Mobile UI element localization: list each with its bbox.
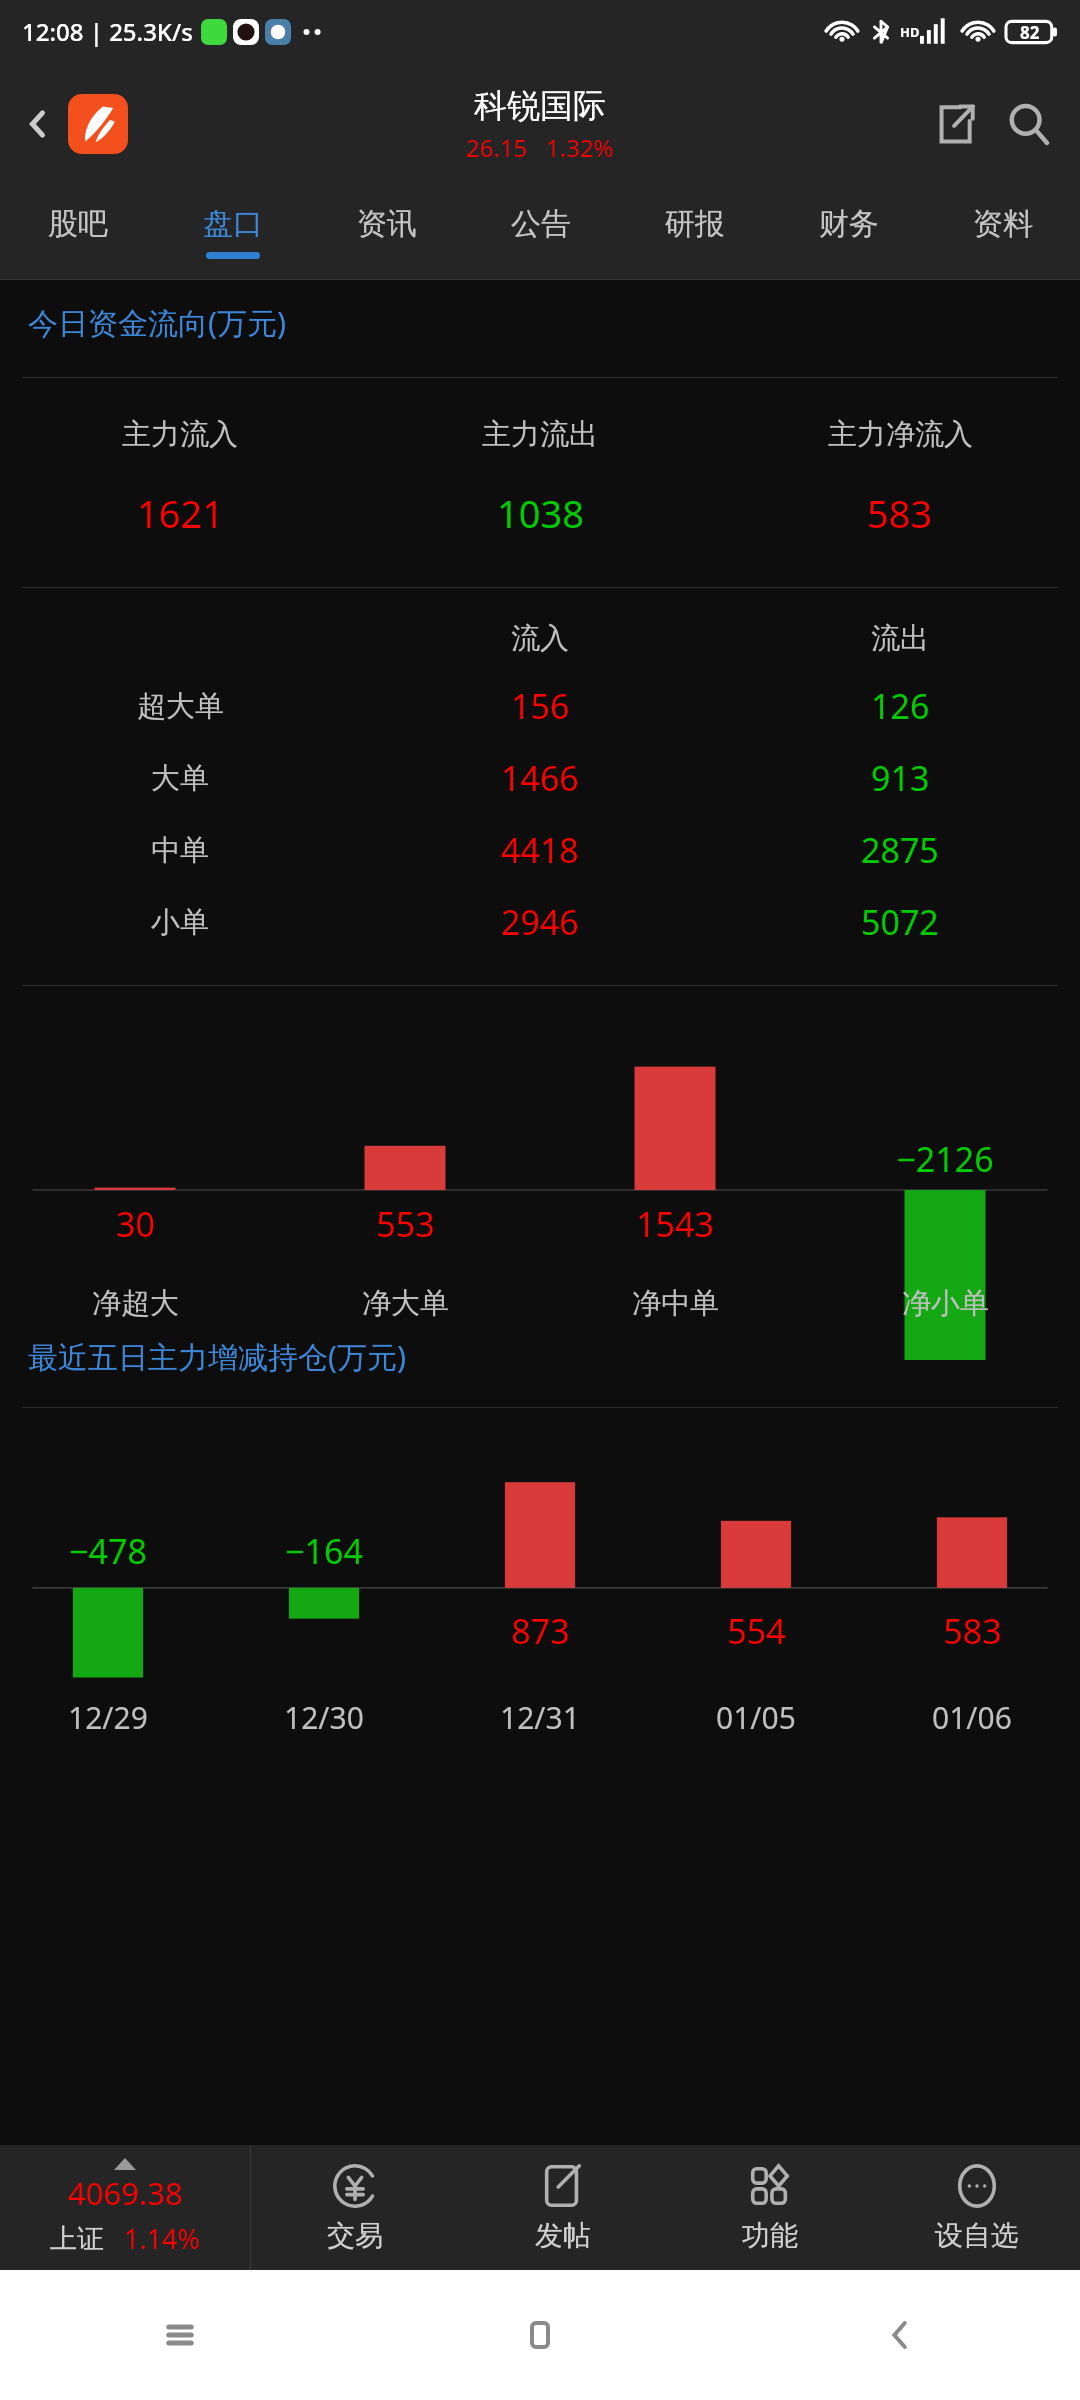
staticText: 26.15 (466, 131, 528, 164)
staticText: 发帖 (535, 2218, 591, 2253)
button[interactable]: 设自选 (873, 2145, 1080, 2270)
button[interactable]: 发帖 (459, 2145, 666, 2270)
staticText: 12:08 | 25.3K/s (22, 15, 193, 48)
staticText: 上证 (50, 2222, 104, 2256)
staticText: 12/31 (500, 1697, 580, 1738)
button[interactable]: Back (720, 2270, 1080, 2400)
staticText: 1543 (636, 1201, 714, 1247)
staticText: 82 (1020, 21, 1040, 44)
staticText: 583 (867, 487, 933, 539)
staticText: 554 (727, 1608, 786, 1654)
staticText: 盘口 (203, 205, 263, 243)
staticText: 01/05 (716, 1697, 796, 1738)
staticText: 913 (871, 755, 930, 801)
staticText: 最近五日主力增减持仓(万元) (28, 1336, 406, 1377)
staticText: 主力净流入 (828, 416, 973, 453)
staticText: 公告 (511, 205, 571, 243)
staticText: 126 (871, 683, 930, 729)
staticText: 超大单 (137, 688, 224, 725)
staticText: 12/29 (68, 1697, 148, 1738)
button[interactable]: 资讯 (310, 185, 464, 279)
staticText: 设自选 (935, 2218, 1019, 2253)
staticText: 156 (511, 683, 570, 729)
staticText: 大单 (151, 760, 209, 797)
staticText: 1038 (497, 487, 584, 539)
staticText: 财务 (819, 205, 879, 243)
button[interactable]: 股吧 (0, 185, 155, 279)
staticText: 主力流入 (122, 416, 238, 453)
staticText: 5072 (861, 899, 939, 945)
staticText: 873 (511, 1608, 570, 1654)
staticText: 交易 (327, 2218, 383, 2253)
staticText: 1.32% (546, 131, 614, 164)
staticText: 研报 (665, 205, 725, 243)
staticText: 今日资金流向(万元) (28, 302, 286, 343)
staticText: 主力流出 (482, 416, 598, 453)
button[interactable]: Back (10, 96, 66, 152)
button[interactable]: Search (996, 91, 1062, 157)
staticText: 净小单 (902, 1285, 989, 1322)
button[interactable]: 交易 (251, 2145, 459, 2270)
staticText: 583 (943, 1608, 1002, 1654)
button[interactable]: 功能 (666, 2145, 873, 2270)
button[interactable]: 财务 (772, 185, 926, 279)
button[interactable]: Home (360, 2270, 720, 2400)
staticText: 资料 (973, 205, 1033, 243)
staticText: 1621 (137, 487, 224, 539)
staticText: 净大单 (362, 1285, 449, 1322)
staticText: 净超大 (92, 1285, 179, 1322)
staticText: 中单 (151, 832, 209, 869)
staticText: 4418 (501, 827, 579, 873)
button[interactable]: 资料 (926, 185, 1080, 279)
button[interactable]: 4069.38 (0, 2145, 250, 2270)
staticText: 净中单 (632, 1285, 719, 1322)
staticText: 资讯 (357, 205, 417, 243)
staticText: 功能 (742, 2218, 798, 2253)
staticText: 01/06 (932, 1697, 1012, 1738)
staticText: 553 (376, 1201, 435, 1247)
staticText: 小单 (151, 904, 209, 941)
staticText: −478 (69, 1528, 147, 1574)
staticText: 2875 (861, 827, 939, 873)
staticText: 12/30 (284, 1697, 364, 1738)
staticText: 流出 (871, 620, 929, 657)
staticText: 1.14% (124, 2220, 201, 2257)
staticText: 股吧 (48, 205, 108, 243)
button[interactable]: 盘口 (155, 185, 310, 279)
button[interactable]: App logo (68, 94, 128, 154)
button[interactable]: 公告 (464, 185, 618, 279)
staticText: −164 (285, 1528, 363, 1574)
button[interactable]: 研报 (618, 185, 772, 279)
staticText: 1466 (501, 755, 579, 801)
button[interactable]: Recents (0, 2270, 360, 2400)
staticText: 流入 (511, 620, 569, 657)
staticText: −2126 (896, 1136, 994, 1182)
staticText: HD (900, 23, 920, 41)
staticText: 2946 (501, 899, 579, 945)
staticText: 4069.38 (68, 2172, 183, 2214)
button[interactable]: Share (924, 92, 988, 156)
staticText: 30 (116, 1201, 155, 1247)
staticText: 科锐国际 (474, 85, 606, 127)
